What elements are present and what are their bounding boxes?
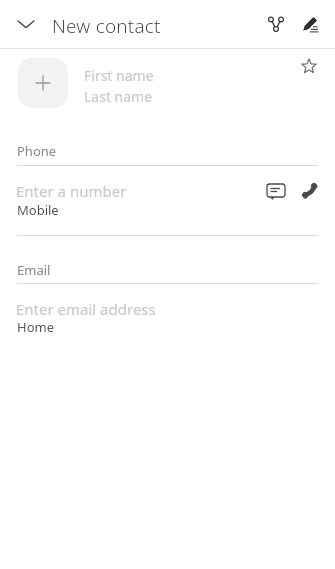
button[interactable]: First name bbox=[80, 58, 280, 108]
staticText: Mobile bbox=[17, 201, 59, 219]
button[interactable] bbox=[6, 4, 46, 44]
button[interactable] bbox=[294, 52, 324, 82]
button[interactable] bbox=[258, 6, 294, 42]
staticText: Last name bbox=[84, 87, 153, 106]
button[interactable]: Enter email address bbox=[0, 292, 335, 344]
staticText: First name bbox=[84, 66, 154, 85]
staticText: Phone bbox=[17, 142, 57, 160]
staticText: Email bbox=[17, 261, 51, 279]
button[interactable]: Enter a number bbox=[0, 174, 335, 226]
staticText: Home bbox=[17, 318, 54, 336]
button[interactable] bbox=[18, 58, 68, 108]
staticText: New contact bbox=[52, 13, 161, 39]
staticText: Enter email address bbox=[16, 299, 156, 319]
button[interactable] bbox=[296, 177, 326, 207]
button[interactable] bbox=[294, 6, 330, 42]
staticText: Enter a number bbox=[16, 181, 127, 201]
button[interactable] bbox=[261, 177, 291, 207]
